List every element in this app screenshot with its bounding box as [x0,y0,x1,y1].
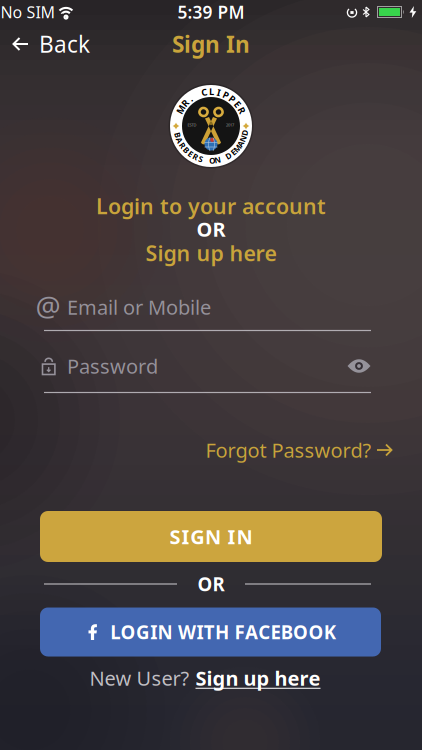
staticText: D [242,127,248,138]
staticText: Forgot Password? [205,437,371,463]
staticText: OR [197,572,224,596]
staticText: E [231,147,235,158]
button[interactable]: Show password [347,358,371,373]
staticText: P [223,89,229,101]
staticText: Login to your account [96,192,326,220]
staticText: E [235,98,240,110]
staticText [196,88,198,101]
staticText: 2017 [226,122,234,128]
staticText: E [188,148,192,159]
staticText: @ [35,287,60,325]
staticText: B [184,145,189,155]
staticText: Sign up here [195,665,320,691]
staticText: LOGIN WITH FACEBOOK [110,620,336,644]
staticText: A [238,138,244,149]
staticText: I [217,86,221,99]
staticText: Back [39,29,90,59]
button[interactable]: SIGN IN [40,511,382,562]
staticText: P [229,93,235,105]
staticText: Password [67,353,158,379]
staticText: 5:39 PM [177,0,244,23]
staticText: R [239,104,245,116]
staticText: R [182,97,188,109]
button[interactable]: Sign up here [195,665,320,691]
button[interactable]: Back [12,29,90,59]
staticText: M [233,143,241,154]
staticText: SIGN IN [170,523,252,550]
staticText: S [199,154,203,164]
staticText: D [226,150,232,161]
staticText: B [175,130,180,140]
staticText: A [177,135,183,146]
staticText: Sign In [172,29,250,59]
staticText: O [209,155,215,166]
staticText: . [189,92,192,104]
button[interactable]: Forgot Password? [205,437,392,463]
button[interactable]: LOGIN WITH FACEBOOK [40,607,381,656]
staticText: Sign up here [145,239,276,267]
staticText: M [176,103,185,115]
staticText: N [240,133,247,144]
staticText: OR [196,216,225,242]
staticText: N [214,154,221,165]
staticText: R [193,151,198,162]
staticText: No SIM [0,1,55,23]
staticText: L [209,85,214,98]
staticText: Email or Mobile [67,294,211,320]
staticText: C [201,86,207,98]
staticText: New User? [89,665,189,691]
staticText: ESTD [187,122,196,128]
staticText: R [180,140,185,151]
button[interactable]: Sign up here [145,239,276,267]
